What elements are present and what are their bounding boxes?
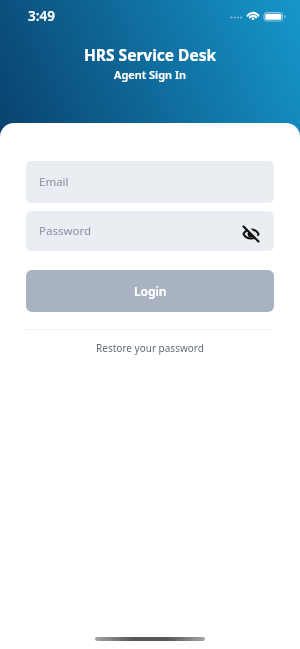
staticText: HRS Service Desk bbox=[84, 44, 217, 65]
button[interactable]: Restore your password bbox=[26, 341, 274, 355]
staticText: Agent Sign In bbox=[114, 67, 187, 82]
button[interactable]: Login bbox=[26, 270, 274, 312]
button[interactable] bbox=[242, 225, 260, 243]
staticText: Login bbox=[134, 283, 167, 299]
staticText: Restore your password bbox=[96, 341, 204, 355]
staticText: 3:49 bbox=[28, 7, 55, 25]
staticText: Password bbox=[39, 223, 92, 239]
button[interactable]: Password bbox=[26, 211, 274, 251]
staticText: Email bbox=[39, 174, 69, 190]
button[interactable]: Email bbox=[26, 161, 274, 203]
